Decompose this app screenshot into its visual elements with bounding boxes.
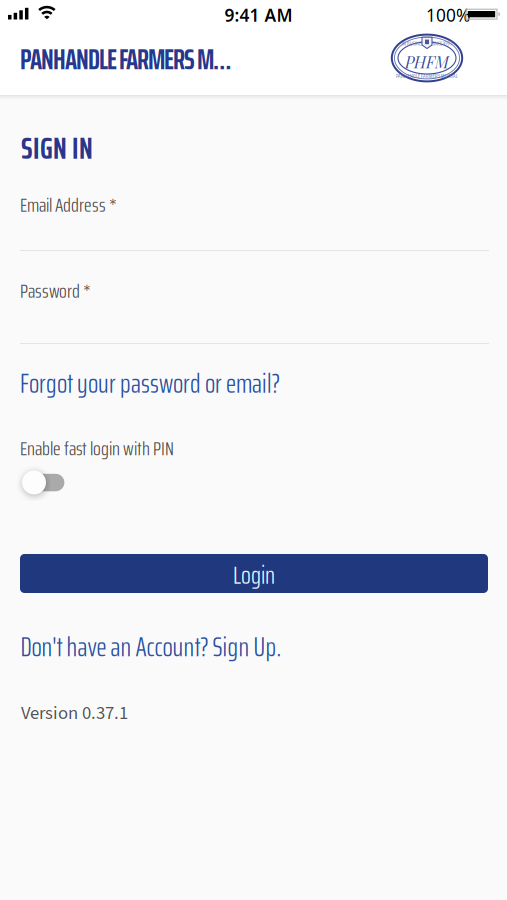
staticText: Password * [20,275,91,306]
staticText: SIGN IN [21,124,93,172]
staticText: Don't have an Account? Sign Up. [20,626,281,668]
staticText: 9:41 AM [224,3,292,26]
button[interactable]: Login [20,554,488,593]
staticText: Enable fast login with PIN [20,432,174,464]
staticText: Email Address * [20,189,117,220]
button[interactable]: Don't have an Account? Sign Up. [20,626,281,668]
staticText: PANHANDLE FARMERS MUTUAL [396,71,458,81]
staticText: Version 0.37.1 [21,700,128,727]
button[interactable] [20,469,68,496]
staticText: Forgot your password or email? [20,362,280,404]
staticText: Login [233,555,275,595]
staticText: PANHANDLE FARMERS M… [20,37,231,82]
staticText: SINCE 1897 [432,38,452,48]
staticText: IN BUSINESS [402,38,425,48]
staticText: PHFM [405,51,449,72]
button[interactable]: Forgot your password or email? [20,362,280,404]
staticText: 100% [426,3,470,26]
